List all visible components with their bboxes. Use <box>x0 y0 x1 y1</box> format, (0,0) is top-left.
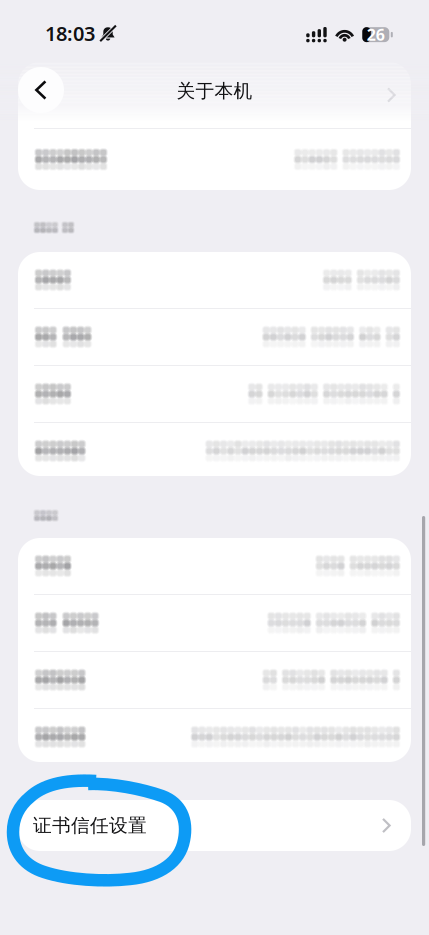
staticText: 26 <box>367 24 385 45</box>
button[interactable] <box>18 595 411 651</box>
button[interactable] <box>18 538 411 594</box>
button[interactable] <box>18 252 411 308</box>
button[interactable]: 证书信任设置 <box>18 800 411 851</box>
staticText: 18:03 <box>45 20 95 47</box>
button[interactable] <box>18 129 411 190</box>
button[interactable] <box>18 62 411 128</box>
staticText: 证书信任设置 <box>33 814 147 837</box>
button[interactable]: Back <box>18 67 64 113</box>
staticText: 关于本机 <box>176 79 252 102</box>
button[interactable] <box>18 709 411 765</box>
button[interactable] <box>18 652 411 708</box>
button[interactable] <box>18 423 411 479</box>
button[interactable] <box>18 309 411 365</box>
button[interactable] <box>18 366 411 422</box>
